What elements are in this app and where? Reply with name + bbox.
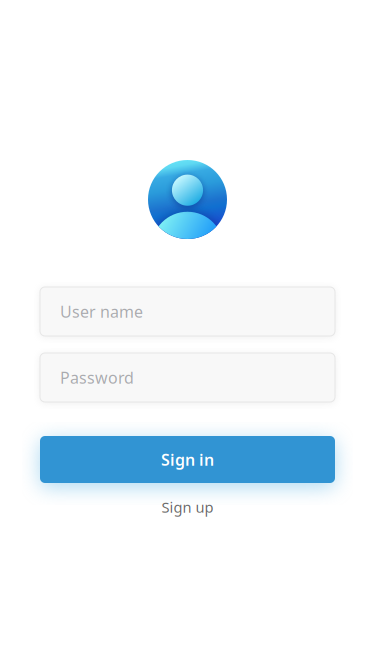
staticText: User name [60, 301, 143, 322]
staticText: Sign in [161, 449, 214, 470]
button[interactable]: Password [40, 353, 335, 402]
staticText: Password [60, 367, 134, 388]
button[interactable]: User name [40, 287, 335, 336]
button[interactable]: Sign up [127, 497, 247, 517]
staticText: Sign up [161, 497, 213, 517]
button[interactable]: Sign in [40, 436, 335, 483]
